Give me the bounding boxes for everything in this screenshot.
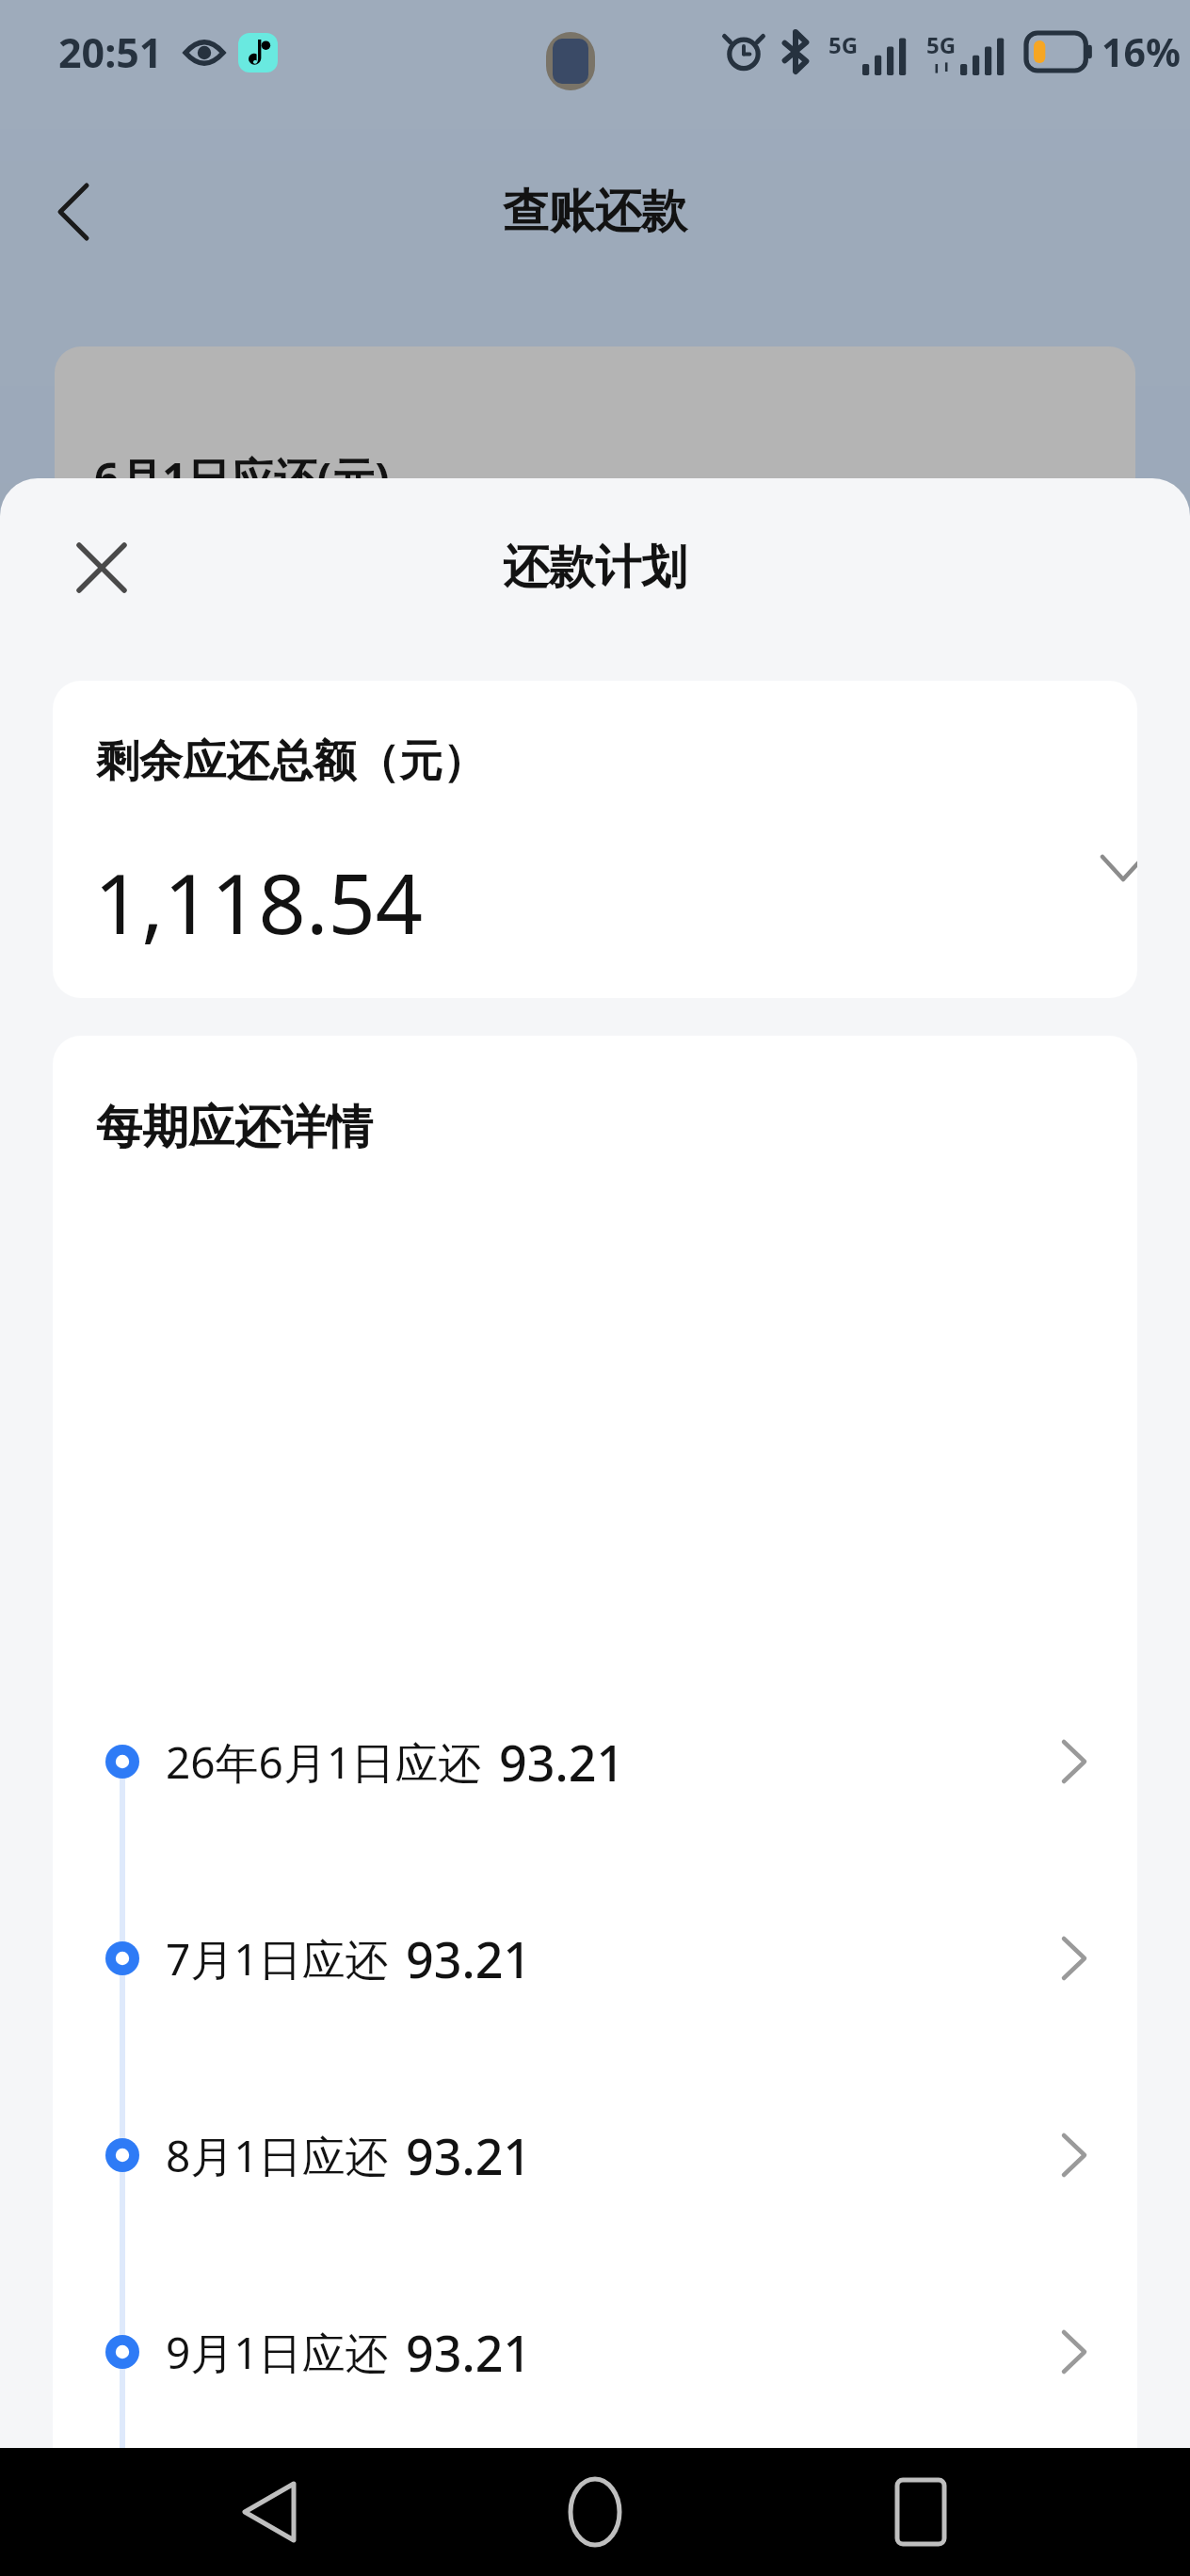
- staticText: 93.21: [406, 2319, 532, 2386]
- button[interactable]: Recents: [864, 2455, 977, 2568]
- staticText: 7月1日应还: [166, 1929, 389, 1988]
- staticText: 每期应还详情: [96, 1099, 373, 1157]
- button[interactable]: 剩余应还总额（元）: [53, 681, 1137, 998]
- staticText: 查账还款: [503, 183, 687, 241]
- other: Details: [1032, 1916, 1117, 2001]
- staticText: 剩余应还总额（元）: [96, 734, 486, 789]
- button[interactable]: Home: [539, 2455, 651, 2568]
- button[interactable]: Back: [213, 2455, 326, 2568]
- button[interactable]: 26年6月1日应还: [53, 1686, 1137, 1837]
- staticText: 20:51: [58, 24, 163, 80]
- staticText: 26年6月1日应还: [166, 1732, 482, 1792]
- staticText: 10月1日应还: [166, 2520, 413, 2576]
- button[interactable]: Close: [55, 521, 149, 615]
- staticText: 8月1日应还: [166, 2126, 389, 2185]
- staticText: 9月1日应还: [166, 2323, 389, 2382]
- button[interactable]: 9月1日应还: [53, 2277, 1137, 2427]
- staticText: 5G: [926, 29, 957, 60]
- button[interactable]: 10月1日应还: [53, 2473, 1137, 2576]
- other: Details: [1032, 2113, 1117, 2198]
- button[interactable]: 8月1日应还: [53, 2080, 1137, 2230]
- button[interactable]: 7月1日应还: [53, 1883, 1137, 2034]
- staticText: 6月1日应还(元): [94, 448, 390, 507]
- staticText: 16%: [1102, 25, 1181, 78]
- staticText: 5G: [828, 29, 859, 60]
- other: Details: [1032, 1719, 1117, 1804]
- other: Expand: [1071, 816, 1137, 920]
- staticText: 93.21: [406, 2122, 532, 2189]
- staticText: 93.21: [499, 1729, 625, 1795]
- staticText: 还款计划: [503, 539, 687, 597]
- staticText: 1,118.54: [94, 845, 424, 958]
- staticText: 93.21: [406, 1925, 532, 1992]
- other: Details: [1032, 2310, 1117, 2394]
- button[interactable]: Back: [28, 167, 119, 257]
